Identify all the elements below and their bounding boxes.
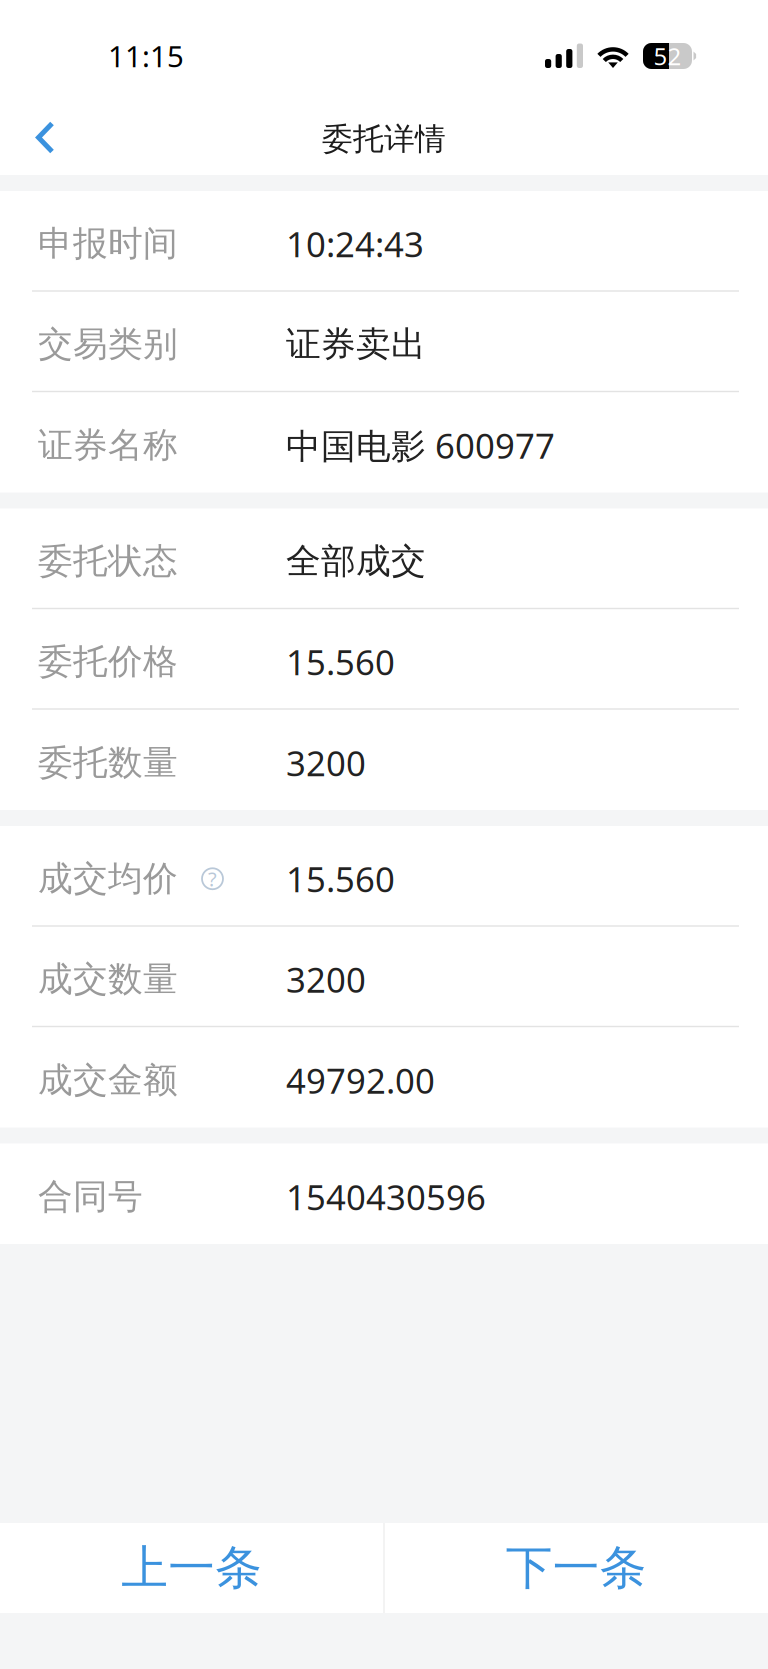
button[interactable]: 上一条 [0,1523,383,1613]
staticText: 成交金额 [38,1058,178,1102]
staticText: 1540430596 [286,1173,486,1220]
staticText: 全部成交 [286,539,426,583]
staticText: 成交均价 [38,857,178,901]
button[interactable]: 下一条 [384,1523,768,1613]
staticText: 10:24:43 [286,220,424,267]
staticText: 委托状态 [38,539,178,583]
staticText: 3200 [286,739,366,786]
staticText: 上一条 [121,1539,262,1597]
staticText: 合同号 [38,1175,143,1219]
staticText: ? [208,865,217,892]
button[interactable]: 成交均价说明 [202,868,223,889]
staticText: 交易类别 [38,322,178,366]
staticText: 下一条 [506,1539,647,1597]
staticText: 证券名称 [38,423,178,467]
staticText: 52 [653,40,681,72]
staticText: 15.560 [286,855,395,902]
staticText: 委托详情 [322,120,446,158]
staticText: 证券卖出 [286,322,426,366]
button[interactable]: 返回 [13,105,77,169]
staticText: 15.560 [286,638,395,685]
staticText: 申报时间 [38,222,178,266]
staticText: 委托价格 [38,640,178,684]
staticText: 中国电影 600977 [286,422,555,469]
staticText: 11:15 [108,36,184,76]
staticText: 3200 [286,956,366,1003]
staticText: 委托数量 [38,741,178,785]
staticText: 49792.00 [286,1057,435,1104]
staticText: 成交数量 [38,957,178,1001]
